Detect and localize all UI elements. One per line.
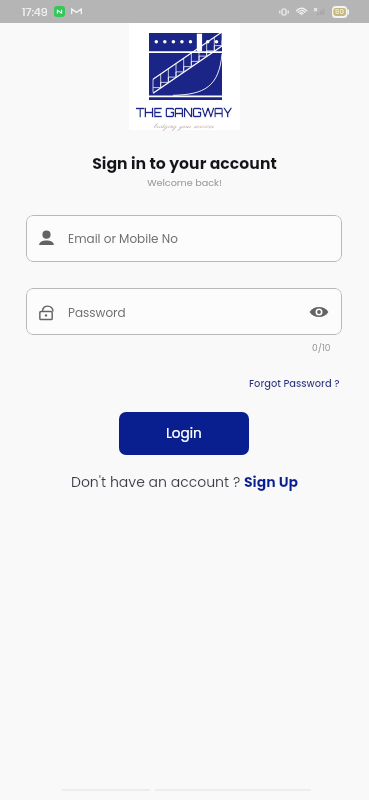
staticText: 90 (335, 7, 344, 17)
staticText: Don't have an account ? (71, 472, 244, 492)
staticText: Login (166, 424, 202, 443)
button[interactable]: Show password (307, 300, 331, 324)
staticText: Welcome back! (147, 176, 222, 189)
button[interactable]: Password (26, 288, 342, 335)
staticText: Forgot Password ? (249, 377, 340, 391)
staticText: Sign Up (244, 472, 299, 492)
button[interactable]: Forgot Password ? (249, 377, 340, 391)
staticText: bridging your services (154, 122, 215, 131)
staticText: 0/10 (312, 342, 331, 355)
staticText: Email or Mobile No (68, 230, 178, 247)
staticText: Password (68, 304, 126, 321)
staticText: THE GANGWAY (136, 106, 233, 120)
button[interactable]: Sign Up (244, 472, 299, 492)
button[interactable]: Login (119, 412, 249, 455)
staticText: Sign in to your account (92, 153, 277, 175)
button[interactable]: Email or Mobile No (26, 215, 342, 262)
staticText: 17:49 (22, 4, 48, 19)
